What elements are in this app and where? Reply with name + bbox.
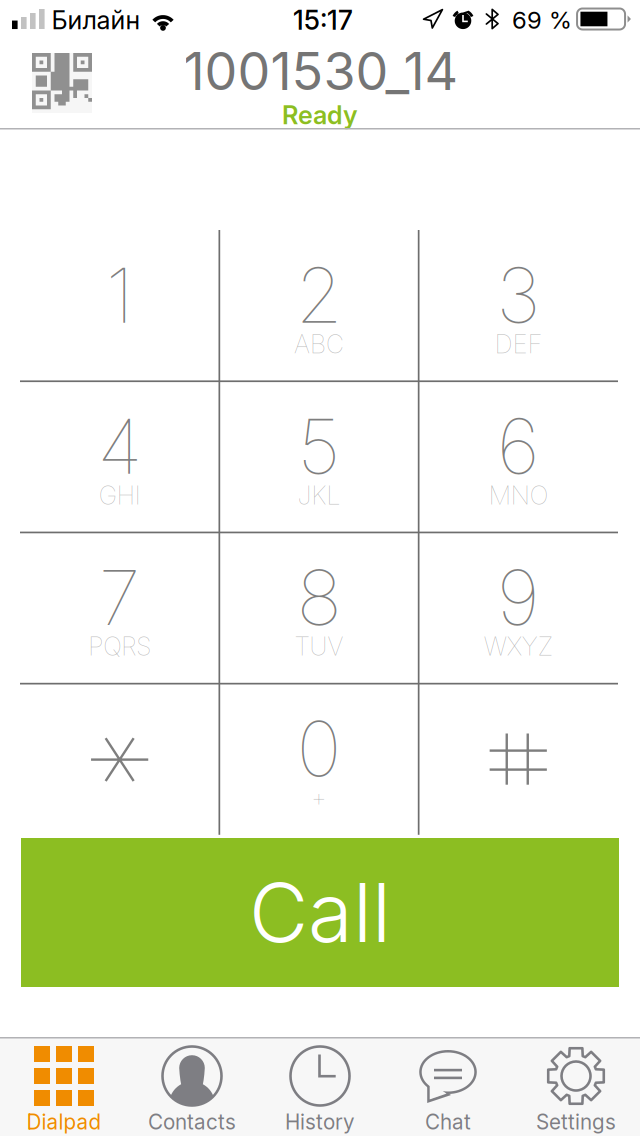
button[interactable]: Call bbox=[21, 838, 619, 987]
button[interactable]: 0 bbox=[219, 684, 419, 835]
button[interactable]: Settings bbox=[512, 1037, 640, 1136]
staticText: DEF bbox=[495, 329, 542, 359]
staticText: 15:17 bbox=[293, 4, 353, 36]
staticText: 1 bbox=[106, 249, 134, 341]
button[interactable]: 8 bbox=[219, 532, 419, 684]
staticText: TUV bbox=[294, 631, 343, 662]
staticText: Call bbox=[249, 863, 391, 962]
button[interactable]: 9 bbox=[419, 532, 618, 684]
button[interactable]: 3 bbox=[419, 230, 618, 381]
button[interactable]: 5 bbox=[219, 381, 419, 532]
staticText: 5 bbox=[297, 400, 340, 492]
staticText: Contacts bbox=[148, 1109, 236, 1134]
button[interactable]: 6 bbox=[419, 381, 618, 532]
button[interactable]: 2 bbox=[219, 230, 419, 381]
staticText: JKL bbox=[297, 480, 340, 511]
button[interactable]: History bbox=[256, 1037, 384, 1136]
button[interactable]: Scan QR code bbox=[32, 53, 92, 113]
staticText: Chat bbox=[425, 1109, 471, 1134]
button[interactable]: 7 bbox=[20, 532, 219, 684]
button[interactable]: Dialpad bbox=[0, 1037, 128, 1136]
button[interactable] bbox=[20, 684, 219, 835]
staticText: History bbox=[285, 1109, 355, 1134]
staticText: MNO bbox=[489, 480, 548, 511]
staticText: Settings bbox=[536, 1109, 616, 1134]
staticText: Билайн bbox=[51, 5, 140, 35]
staticText: 7 bbox=[99, 551, 141, 643]
button[interactable]: Contacts bbox=[128, 1037, 256, 1136]
button[interactable]: Chat bbox=[384, 1037, 512, 1136]
staticText: 69 % bbox=[512, 5, 572, 34]
staticText: 6 bbox=[497, 400, 540, 492]
staticText: ABC bbox=[294, 329, 344, 359]
button[interactable]: 1 bbox=[20, 230, 219, 381]
button[interactable] bbox=[419, 684, 618, 835]
staticText: 2 bbox=[295, 249, 342, 341]
staticText: 0 bbox=[296, 703, 341, 795]
staticText: WXYZ bbox=[484, 631, 553, 662]
staticText: Ready bbox=[282, 100, 358, 130]
staticText: GHI bbox=[99, 480, 141, 511]
staticText: + bbox=[311, 782, 327, 813]
staticText: PQRS bbox=[88, 631, 151, 662]
staticText: 1001530_14 bbox=[183, 39, 458, 102]
staticText: Dialpad bbox=[26, 1109, 101, 1134]
staticText: 4 bbox=[97, 400, 142, 492]
staticText: 9 bbox=[497, 551, 540, 643]
button[interactable]: 4 bbox=[20, 381, 219, 532]
staticText: 8 bbox=[296, 551, 341, 643]
staticText: 3 bbox=[496, 249, 540, 341]
